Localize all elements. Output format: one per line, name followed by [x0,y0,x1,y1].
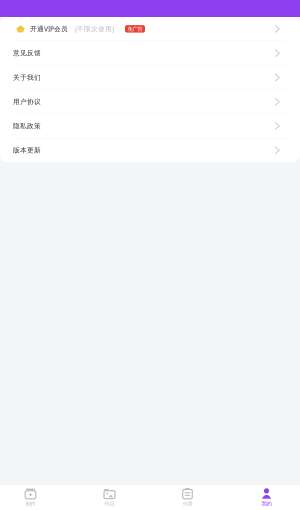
staticText: 意见反馈 [13,49,41,57]
staticText: 制作 [25,500,35,507]
button[interactable]: 隐私政策 [0,114,300,138]
button[interactable]: 我的 [225,485,300,510]
button[interactable]: 用户协议 [0,90,300,114]
staticText: (不限次使用) [75,24,114,33]
button[interactable]: 意见反馈 [0,41,300,65]
button[interactable]: 版本更新 [0,138,300,162]
button[interactable]: 作品 [75,485,150,510]
staticText: 隐私政策 [13,122,41,130]
staticText: 版本更新 [13,146,41,154]
button[interactable]: 制作 [0,485,75,510]
staticText: 开通VIP会员 [30,24,68,33]
staticText: 我的 [261,500,271,507]
staticText: 作品 [104,500,114,507]
button[interactable]: 开通VIP会员 [0,17,300,41]
staticText: 分类 [182,500,192,507]
staticText: 用户协议 [13,98,41,106]
staticText: 关于我们 [13,73,41,82]
staticText: 免广告 [127,26,142,32]
button[interactable]: 关于我们 [0,66,300,89]
button[interactable]: 分类 [150,485,225,510]
